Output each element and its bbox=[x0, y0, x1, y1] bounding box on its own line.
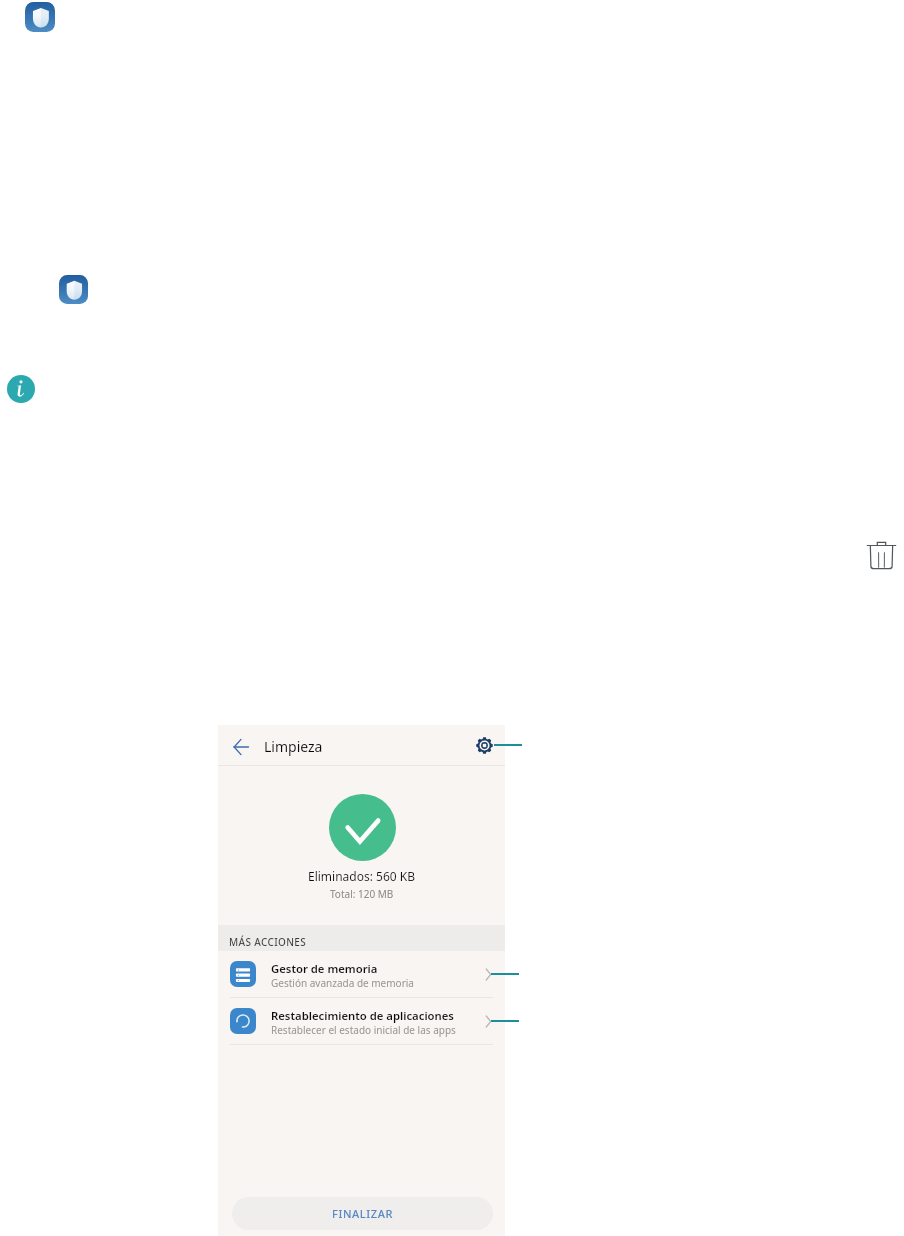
button[interactable]: FINALIZAR bbox=[232, 1197, 493, 1230]
staticText: Restablecimiento de aplicaciones bbox=[271, 1008, 454, 1023]
button[interactable]: Gestor de memoria bbox=[218, 951, 505, 997]
button[interactable]: Information bbox=[7, 375, 35, 403]
staticText: MÁS ACCIONES bbox=[229, 935, 307, 949]
button[interactable]: Settings bbox=[473, 734, 495, 756]
button[interactable]: Restablecimiento de aplicaciones bbox=[218, 998, 505, 1044]
staticText: Gestión avanzada de memoria bbox=[271, 976, 414, 990]
button[interactable]: Security app icon bbox=[25, 2, 55, 32]
button[interactable]: Security app icon bbox=[59, 275, 88, 304]
staticText: Restablecer el estado inicial de las app… bbox=[271, 1023, 456, 1037]
button[interactable]: Back bbox=[230, 736, 251, 757]
staticText: Eliminados: 560 KB bbox=[308, 868, 415, 884]
staticText: FINALIZAR bbox=[332, 1206, 394, 1221]
button[interactable]: Delete bbox=[867, 541, 896, 570]
staticText: Gestor de memoria bbox=[271, 961, 378, 976]
staticText: Limpieza bbox=[264, 737, 323, 756]
staticText: Total: 120 MB bbox=[330, 887, 394, 901]
